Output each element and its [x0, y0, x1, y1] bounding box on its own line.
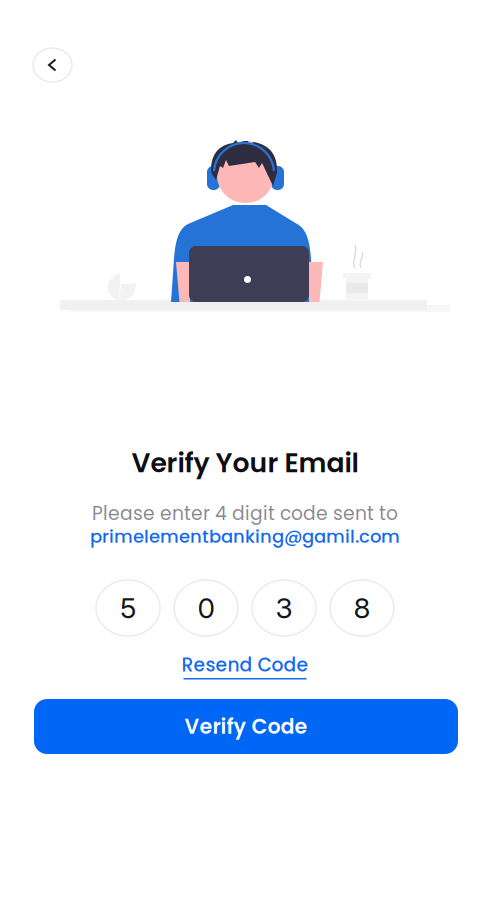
button[interactable]: Verify Code [34, 699, 458, 754]
staticText: primelementbanking@gamil.com [90, 524, 400, 549]
staticText: 5 [120, 591, 136, 625]
staticText: 0 [197, 591, 214, 625]
button[interactable]: Back [33, 48, 72, 82]
staticText: 3 [275, 591, 292, 625]
staticText: Verify Your Email [131, 444, 358, 482]
staticText: Resend Code [181, 652, 308, 678]
staticText: Please enter 4 digit code sent to [92, 500, 398, 526]
staticText: Verify Code [184, 712, 307, 741]
staticText: 8 [353, 591, 370, 625]
button[interactable]: Resend Code [181, 655, 308, 679]
